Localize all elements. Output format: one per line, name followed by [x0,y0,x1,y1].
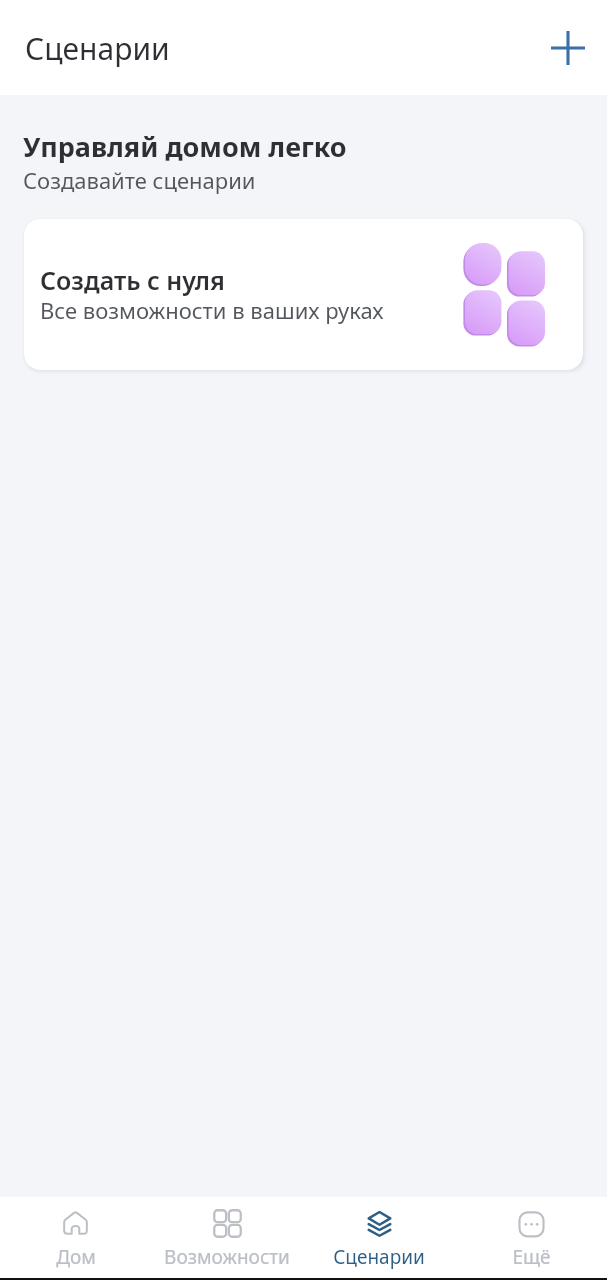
staticText: Возможности [164,1244,290,1270]
button[interactable]: Сценарии [303,1197,455,1270]
staticText: Создать с нуля [40,263,225,297]
staticText: Все возможности в ваших руках [40,295,384,325]
button[interactable]: Создать с нуля [24,219,583,370]
staticText: Ещё [512,1244,551,1270]
button[interactable]: Add scenario [544,24,592,72]
staticText: Создавайте сценарии [23,165,256,195]
button[interactable]: Ещё [455,1197,607,1270]
staticText: Управляй домом легко [23,128,347,165]
staticText: Дом [56,1244,96,1270]
button[interactable]: Дом [0,1197,151,1270]
button[interactable]: Возможности [151,1197,303,1270]
staticText: Сценарии [25,28,170,69]
staticText: Сценарии [333,1244,425,1270]
